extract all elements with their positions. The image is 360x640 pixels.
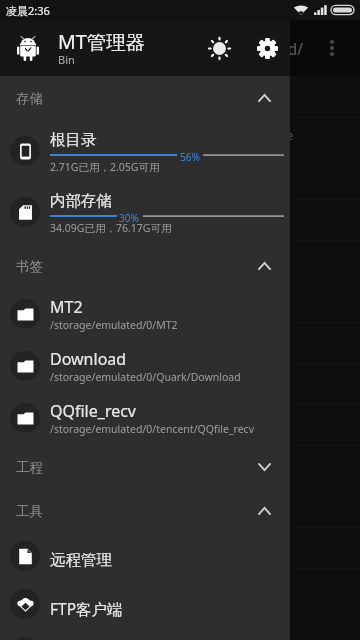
- staticText: 内部存储: [50, 191, 112, 211]
- button[interactable]: 存储: [0, 78, 290, 118]
- staticText: Download: [50, 348, 127, 370]
- staticText: 2021-04-12 08:33: [46, 306, 127, 320]
- button[interactable]: 工程: [0, 447, 290, 487]
- button[interactable]: com.tencent.mm.plugin.MMOnLineTool: [0, 528, 360, 568]
- staticText: 2021-04-12 08:33: [46, 224, 127, 238]
- staticText: com.google.android.storageprovider: [46, 454, 271, 472]
- button[interactable]: Brightness: [203, 32, 235, 64]
- button[interactable]: com.android.dialer.cache: [0, 200, 360, 240]
- staticText: com.android.providers.media.storage: [46, 167, 277, 185]
- button[interactable]: 根目录: [0, 123, 290, 179]
- staticText: 2021-04-12 08:33: [46, 552, 127, 566]
- button[interactable]: com.tencent.mobileqq: [0, 569, 360, 609]
- staticText: 30%: [119, 211, 139, 225]
- staticText: 工具: [16, 503, 43, 520]
- button[interactable]: com.android.providers.media.storage: [0, 159, 360, 199]
- staticText: 存储: [16, 90, 43, 107]
- staticText: 2021-04-12 08:33: [46, 142, 127, 156]
- button[interactable]: 工具: [0, 491, 290, 531]
- button[interactable]: QQfile_recv: [0, 393, 290, 443]
- staticText: FTP客户端: [50, 598, 123, 619]
- button[interactable]: FTP客户端: [0, 580, 290, 628]
- staticText: com.android.settings.backuprestore: [46, 290, 268, 308]
- button[interactable]: Settings: [251, 32, 283, 64]
- staticText: 工程: [16, 459, 43, 476]
- staticText: com.android.dialer.cache: [46, 208, 199, 226]
- button[interactable]: More options: [312, 28, 352, 68]
- staticText: 书签: [16, 258, 43, 275]
- button[interactable]: com.android.launcher: [0, 323, 360, 363]
- button[interactable]: com.quark.browser: [0, 610, 360, 640]
- staticText: com.google.android.gms.MultiService: [46, 413, 278, 431]
- staticText: /storage/emulated/0/Quark/Download: [50, 370, 241, 384]
- staticText: MT2: [50, 296, 83, 318]
- staticText: 凌晨2:36: [6, 3, 50, 18]
- staticText: 根目录: [50, 130, 97, 150]
- staticText: 2021-04-12 08:33: [46, 183, 127, 197]
- button[interactable]: com.android.providers.downloads.cache: [0, 118, 360, 158]
- staticText: Bin: [58, 52, 75, 67]
- staticText: QQfile_recv: [50, 400, 137, 422]
- staticText: /storage/emulated/0/tencent/QQfile_recv: [50, 422, 254, 436]
- button[interactable]: 远程管理: [0, 532, 290, 580]
- staticText: /storage/emulated/0/MT2: [50, 318, 178, 332]
- staticText: MT管理器: [58, 28, 146, 55]
- button[interactable]: com.android.externalstorage.provider: [0, 241, 360, 281]
- button[interactable]: 内部存储: [0, 184, 290, 240]
- button[interactable]: MT Manager: [11, 31, 45, 65]
- button[interactable]: Download: [0, 341, 290, 391]
- button[interactable]: com.miui.gallery: [0, 487, 360, 527]
- staticText: com.tencent.mm.plugin.MMOnLineTool: [46, 536, 289, 554]
- button[interactable]: com.google.android.storageprovider: [0, 446, 360, 486]
- staticText: 2.71G已用，2.05G可用: [50, 160, 160, 174]
- button[interactable]: com.google.android.gms.MultiService: [0, 405, 360, 445]
- staticText: 56%: [180, 150, 200, 164]
- staticText: 远程管理: [50, 550, 112, 570]
- button[interactable]: com.android.settings.backuprestore: [0, 282, 360, 322]
- staticText: /storage/emulated/0/Quark/Download/: [16, 38, 304, 59]
- staticText: com.android.systemui: [46, 372, 182, 390]
- staticText: 2021-04-12 08:33: [46, 429, 127, 443]
- button[interactable]: com.android.systemui: [0, 364, 360, 404]
- staticText: com.android.providers.downloads.cache: [46, 126, 294, 144]
- staticText: 2021-04-12 08:33: [46, 593, 127, 607]
- button[interactable]: com.android.bluetooth: [0, 77, 360, 117]
- staticText: 34.09G已用，76.17G可用: [50, 221, 172, 235]
- button[interactable]: MT2: [0, 289, 290, 339]
- staticText: com.android.externalstorage.provider: [46, 249, 279, 267]
- button[interactable]: 书签: [0, 246, 290, 286]
- staticText: com.android.launcher: [46, 331, 181, 349]
- staticText: 2021-04-12 08:33: [46, 347, 127, 361]
